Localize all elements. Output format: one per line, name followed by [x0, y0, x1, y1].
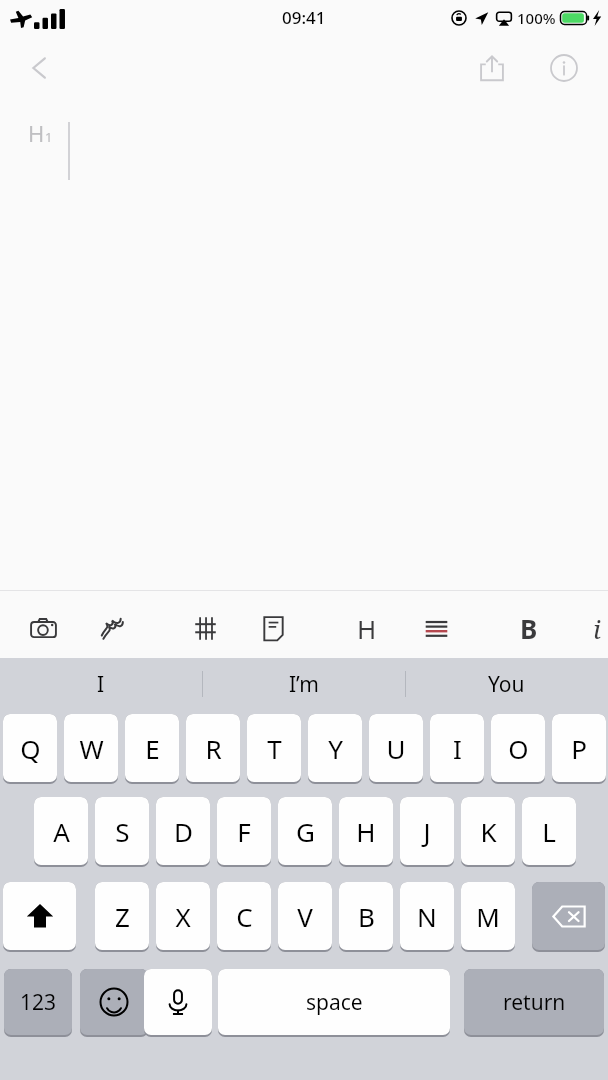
button[interactable]: space: [218, 969, 450, 1035]
button[interactable]: P: [552, 714, 606, 782]
button[interactable]: V: [278, 882, 332, 950]
button[interactable]: Y: [308, 714, 362, 782]
staticText: You: [488, 670, 525, 699]
staticText: A: [53, 814, 70, 849]
staticText: space: [306, 988, 363, 1017]
button[interactable]: Z: [95, 882, 149, 950]
staticText: L: [542, 814, 556, 849]
button[interactable]: Adjust: [181, 604, 229, 652]
button[interactable]: i: [573, 604, 608, 652]
button[interactable]: 123: [4, 969, 72, 1035]
staticText: I: [453, 731, 462, 766]
button[interactable]: Draw: [87, 604, 135, 652]
button[interactable]: A: [34, 797, 88, 865]
button[interactable]: O: [491, 714, 545, 782]
staticText: T: [267, 731, 282, 766]
staticText: N: [417, 899, 437, 934]
staticText: H: [356, 814, 376, 849]
button[interactable]: Share: [468, 44, 516, 92]
button[interactable]: Camera: [19, 604, 67, 652]
button[interactable]: You: [405, 658, 608, 710]
staticText: X: [175, 899, 191, 934]
button[interactable]: H: [339, 797, 393, 865]
button[interactable]: K: [461, 797, 515, 865]
staticText: 09:41: [282, 6, 326, 29]
staticText: 123: [20, 988, 57, 1017]
button[interactable]: N: [400, 882, 454, 950]
staticText: S: [115, 814, 130, 849]
button[interactable]: E: [125, 714, 179, 782]
staticText: D: [174, 814, 193, 849]
button[interactable]: I: [0, 658, 202, 710]
button[interactable]: J: [400, 797, 454, 865]
staticText: H: [357, 611, 377, 646]
staticText: I’m: [289, 670, 319, 699]
button[interactable]: C: [217, 882, 271, 950]
staticText: I: [97, 670, 105, 699]
staticText: B: [358, 899, 375, 934]
staticText: 1: [45, 128, 53, 146]
button[interactable]: W: [64, 714, 118, 782]
button[interactable]: Shift: [3, 882, 76, 950]
button[interactable]: Info: [540, 44, 588, 92]
button[interactable]: Q: [3, 714, 57, 782]
staticText: M: [476, 899, 500, 934]
button[interactable]: L: [522, 797, 576, 865]
staticText: Z: [115, 899, 130, 934]
staticText: H: [28, 118, 45, 148]
staticText: B: [520, 611, 538, 646]
button[interactable]: I: [430, 714, 484, 782]
button[interactable]: R: [186, 714, 240, 782]
button[interactable]: Emoji: [80, 969, 148, 1035]
staticText: E: [145, 731, 160, 766]
button[interactable]: H: [343, 604, 391, 652]
staticText: 100%: [517, 8, 556, 28]
button[interactable]: Note: [249, 604, 297, 652]
staticText: P: [571, 731, 587, 766]
staticText: J: [423, 814, 431, 849]
staticText: C: [236, 899, 253, 934]
staticText: K: [480, 814, 497, 849]
staticText: W: [79, 731, 104, 766]
button[interactable]: B: [505, 604, 553, 652]
button[interactable]: Backspace: [532, 882, 605, 950]
button[interactable]: B: [339, 882, 393, 950]
button[interactable]: T: [247, 714, 301, 782]
button[interactable]: Back: [16, 44, 64, 92]
staticText: G: [296, 814, 315, 849]
staticText: return: [503, 988, 566, 1017]
button[interactable]: D: [156, 797, 210, 865]
button[interactable]: Paragraph style: [412, 604, 460, 652]
staticText: F: [237, 814, 251, 849]
staticText: Y: [328, 731, 343, 766]
button[interactable]: return: [464, 969, 604, 1035]
button[interactable]: F: [217, 797, 271, 865]
staticText: R: [205, 731, 222, 766]
staticText: O: [508, 731, 529, 766]
staticText: i: [593, 611, 601, 646]
button[interactable]: U: [369, 714, 423, 782]
button[interactable]: Dictate: [144, 969, 212, 1035]
button[interactable]: G: [278, 797, 332, 865]
button[interactable]: S: [95, 797, 149, 865]
button[interactable]: I’m: [202, 658, 405, 710]
staticText: Q: [20, 731, 41, 766]
staticText: U: [386, 731, 406, 766]
staticText: V: [297, 899, 313, 934]
button[interactable]: M: [461, 882, 515, 950]
button[interactable]: X: [156, 882, 210, 950]
